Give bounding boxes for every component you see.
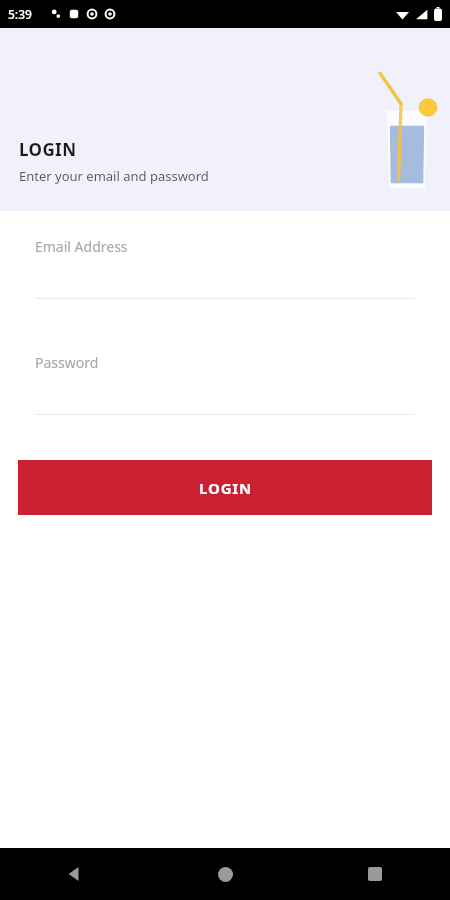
staticText: Password [35, 353, 99, 372]
staticText: 5:39 [8, 6, 32, 22]
button[interactable]: Home [150, 848, 300, 900]
staticText: Email Address [35, 237, 128, 256]
button[interactable]: Recent apps [300, 848, 450, 900]
button[interactable]: Back [0, 848, 150, 900]
staticText: LOGIN [19, 138, 77, 161]
button[interactable]: LOGIN [18, 460, 432, 515]
staticText: Enter your email and password [19, 167, 209, 185]
button[interactable]: Password [0, 340, 450, 415]
staticText: LOGIN [199, 478, 252, 498]
button[interactable]: Email Address [0, 224, 450, 299]
